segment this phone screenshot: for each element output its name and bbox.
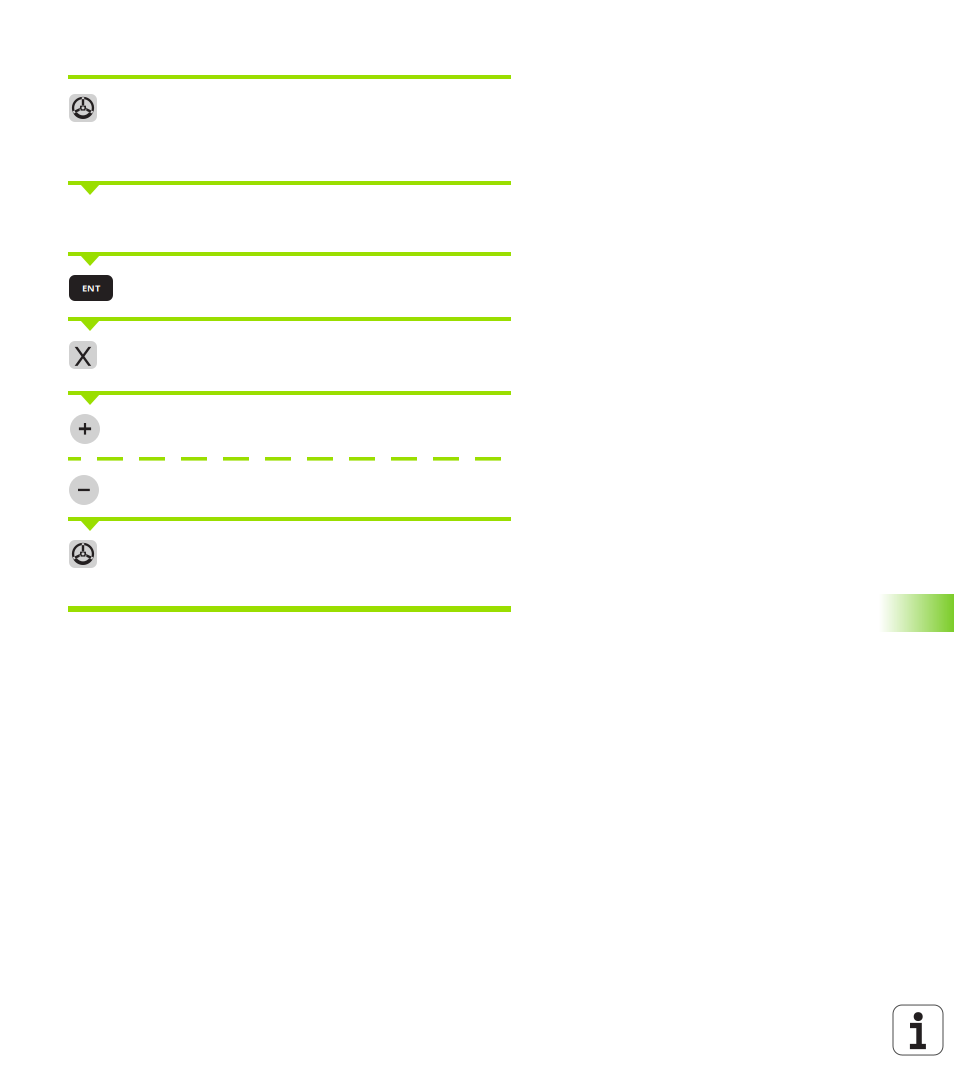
button[interactable]: ENT <box>69 275 113 301</box>
button[interactable]: Decrease <box>69 475 99 505</box>
button[interactable]: Handwheel key <box>69 540 97 568</box>
button[interactable]: Increase <box>70 414 100 444</box>
button[interactable]: Information <box>893 1005 943 1055</box>
button[interactable]: Handwheel key <box>69 94 97 122</box>
button[interactable]: Cancel key <box>69 341 97 369</box>
staticText: ENT <box>82 282 100 294</box>
